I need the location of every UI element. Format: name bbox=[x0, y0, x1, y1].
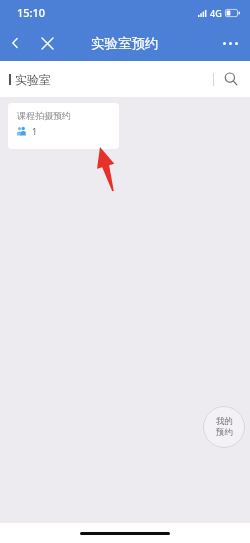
button[interactable]: Back bbox=[3, 31, 27, 55]
staticText: 实验室预约 bbox=[91, 35, 159, 52]
staticText: 4G bbox=[210, 7, 222, 19]
staticText: 我的 bbox=[216, 416, 233, 427]
staticText: 课程拍摄预约 bbox=[17, 110, 71, 121]
staticText: 15:10 bbox=[17, 5, 46, 20]
button[interactable]: 课程拍摄预约 bbox=[8, 103, 119, 149]
button[interactable]: Search bbox=[220, 68, 242, 90]
button[interactable]: More options bbox=[216, 29, 244, 57]
staticText: 实验室 bbox=[15, 72, 51, 87]
button[interactable]: 我的 bbox=[203, 406, 245, 448]
staticText: 1 bbox=[32, 125, 38, 137]
button[interactable]: Close bbox=[34, 30, 60, 56]
staticText: 预约 bbox=[216, 427, 233, 438]
